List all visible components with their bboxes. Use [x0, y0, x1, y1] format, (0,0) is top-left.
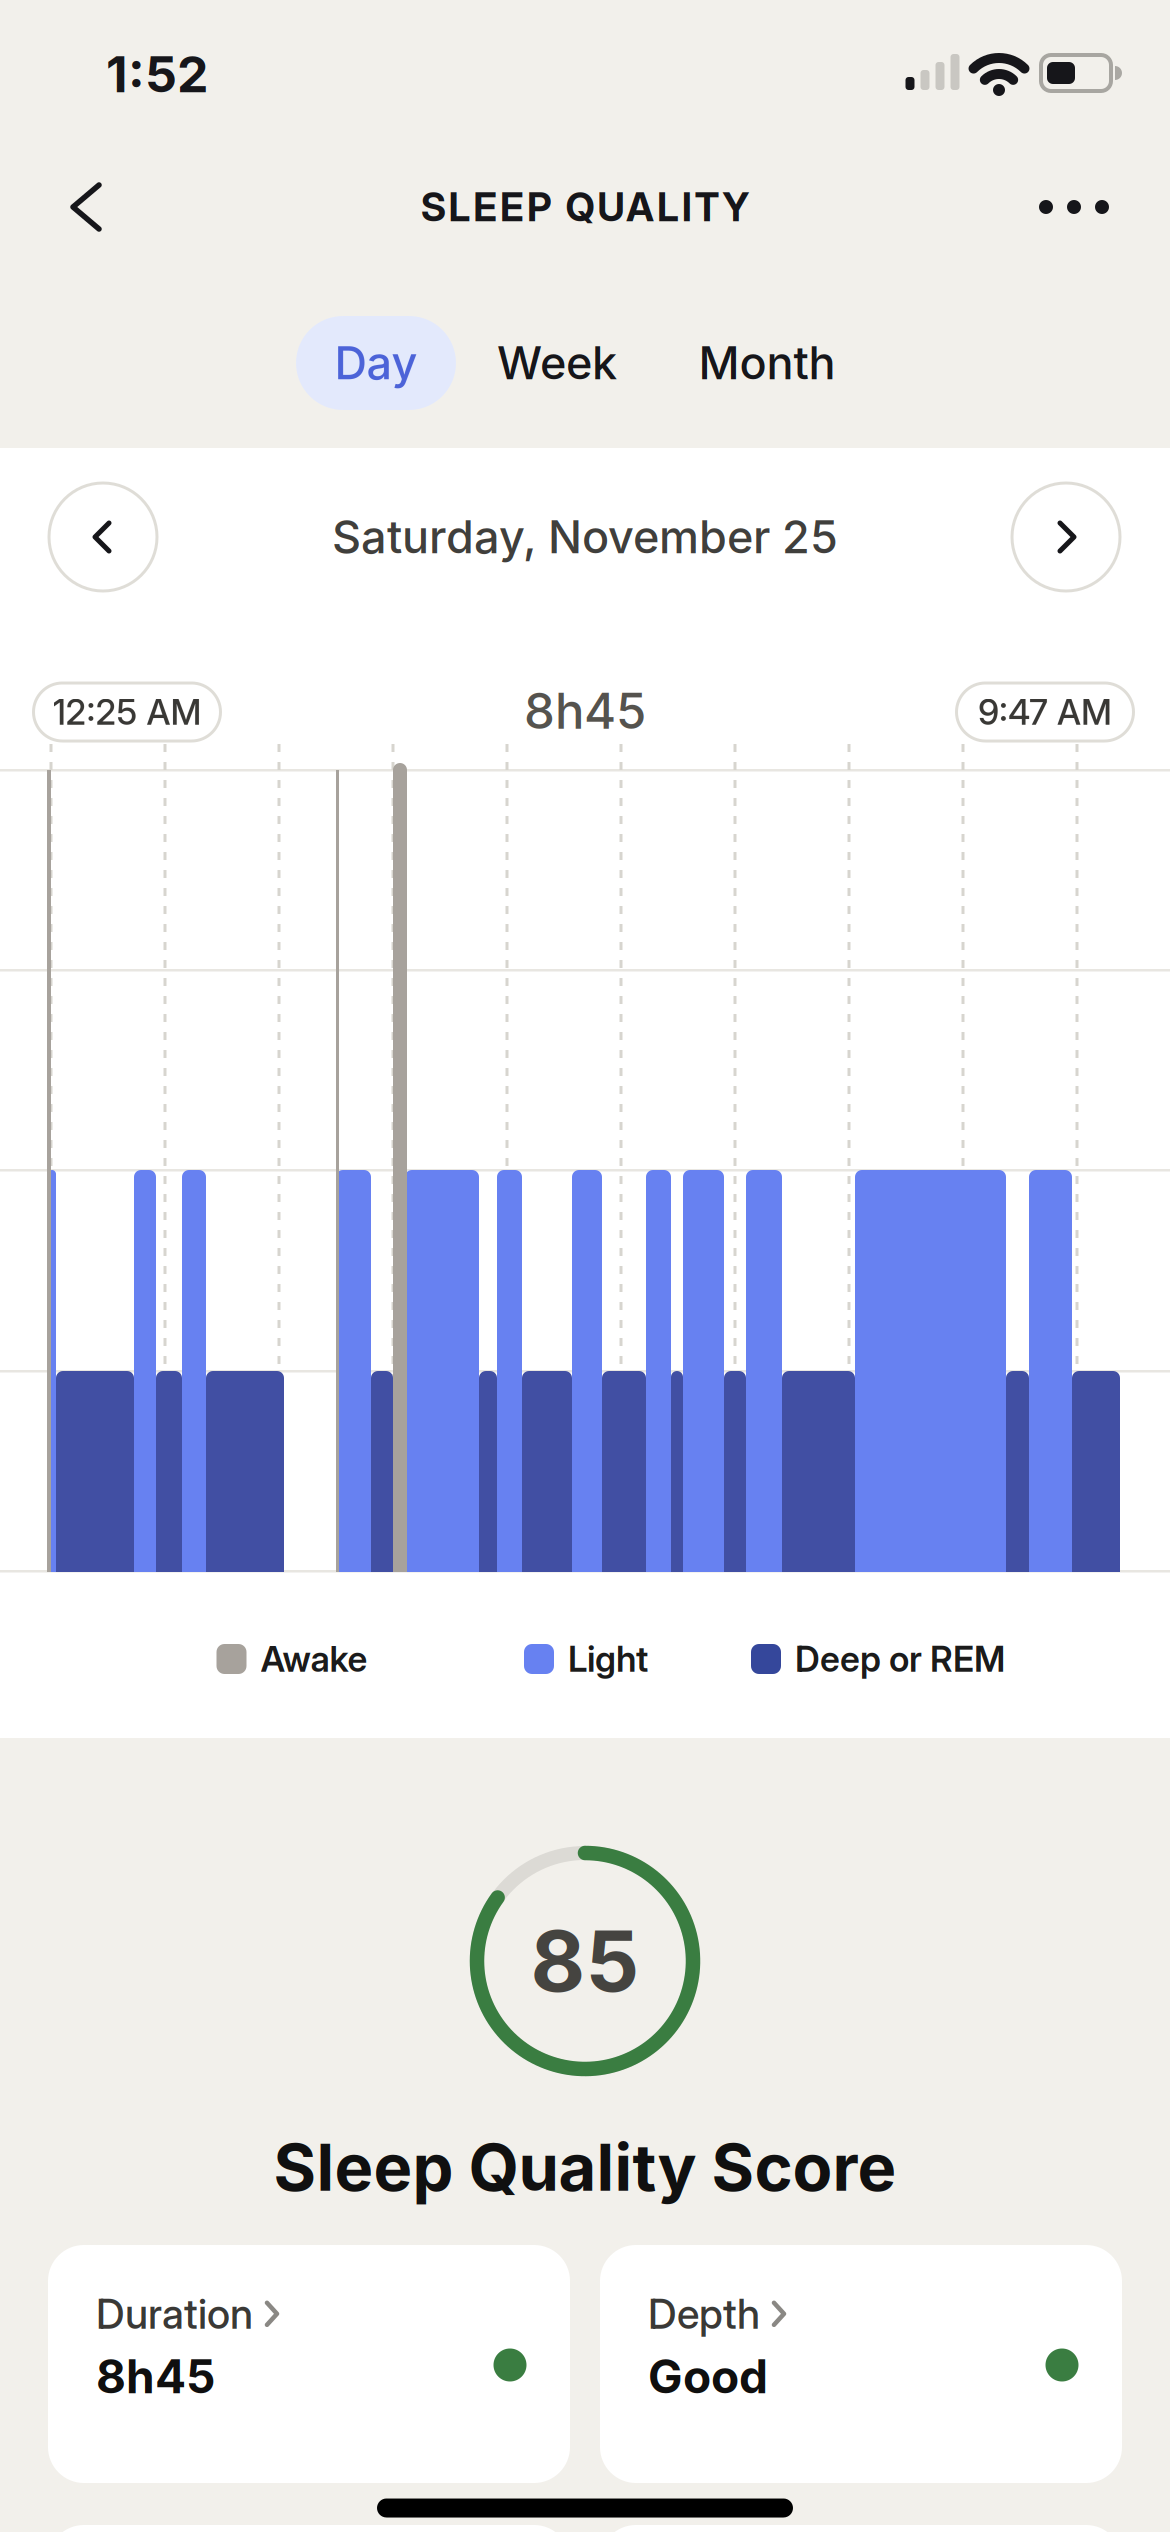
staticText: Depth: [648, 2289, 760, 2339]
staticText: Awake: [260, 1638, 367, 1680]
staticText: 12:25 AM: [52, 691, 201, 733]
staticText: 8h45: [96, 2349, 215, 2404]
staticText: Deep or REM: [795, 1638, 1005, 1680]
staticText: Sleep Quality Score: [273, 2128, 896, 2206]
staticText: 1:52: [106, 44, 208, 104]
staticText: Month: [698, 336, 835, 390]
button[interactable]: Depth: [600, 2245, 1122, 2483]
staticText: 85: [530, 1910, 639, 2012]
button[interactable]: Next day: [1011, 482, 1121, 592]
button[interactable]: Previous day: [48, 482, 158, 592]
staticText: 8h45: [524, 681, 646, 741]
button[interactable]: More options: [1019, 172, 1129, 242]
staticText: Duration: [96, 2289, 253, 2339]
staticText: Day: [334, 336, 417, 390]
button[interactable]: Week: [472, 316, 642, 410]
staticText: Week: [497, 336, 617, 390]
button[interactable]: Duration: [48, 2245, 570, 2483]
button[interactable]: Day: [296, 316, 456, 410]
staticText: Good: [648, 2349, 768, 2404]
staticText: SLEEP QUALITY: [421, 183, 749, 231]
staticText: 9:47 AM: [978, 691, 1112, 733]
button[interactable]: Back: [47, 167, 127, 247]
button[interactable]: Month: [667, 316, 867, 410]
staticText: Saturday, November 25: [332, 510, 838, 564]
staticText: Light: [568, 1638, 648, 1680]
